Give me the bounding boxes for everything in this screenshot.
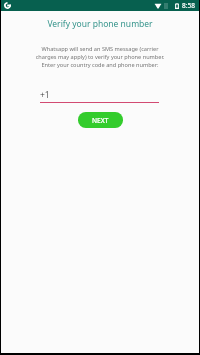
staticText: Whatsapp will send an SMS message (carri… bbox=[0, 45, 200, 69]
staticText: +1 bbox=[40, 89, 50, 101]
staticText: 8:58 bbox=[182, 1, 195, 10]
button[interactable]: +1 bbox=[40, 89, 159, 101]
other: Google bbox=[4, 2, 11, 9]
other: Battery bbox=[175, 3, 179, 9]
staticText: NEXT bbox=[92, 116, 109, 125]
button[interactable]: NEXT bbox=[78, 112, 123, 128]
staticText: Verify your phone number bbox=[0, 18, 200, 30]
other: Wi-Fi bbox=[154, 3, 162, 9]
